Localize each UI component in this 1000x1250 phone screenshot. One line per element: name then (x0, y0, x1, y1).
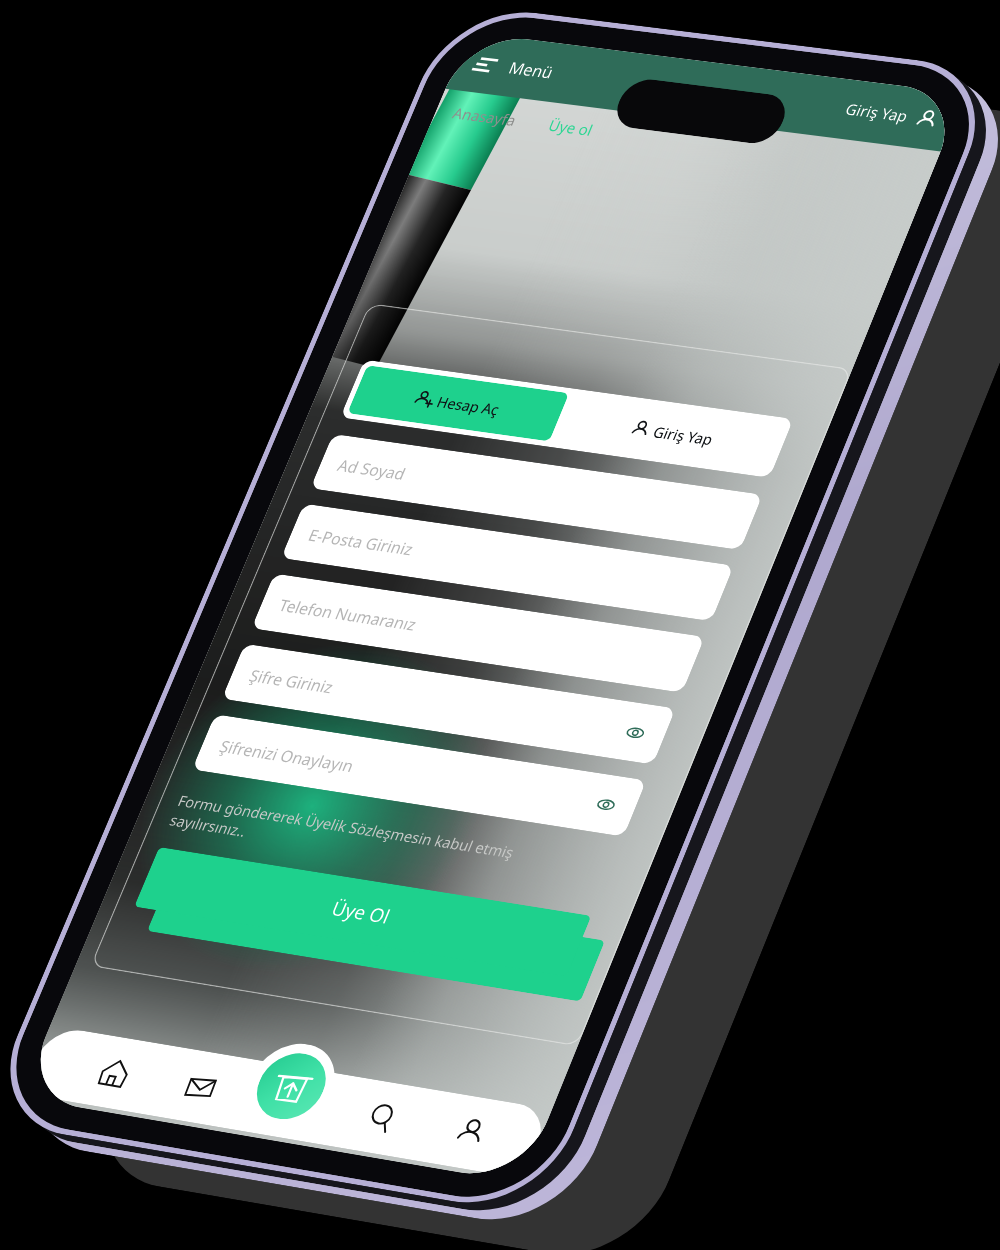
staticText: Giriş Yap (842, 99, 912, 127)
button[interactable]: Anasayfa (449, 103, 520, 131)
button[interactable]: Giriş Yap (552, 389, 794, 478)
button[interactable]: Telefon Numaranız (251, 573, 705, 693)
staticText: Şifrenizi Onaylayın (217, 735, 358, 776)
button[interactable]: Search (325, 1076, 440, 1160)
button[interactable]: Mail (143, 1046, 257, 1129)
staticText: Formu göndererek Üyelik Sözleşmesin kabu… (167, 790, 553, 888)
staticText: Menü (505, 57, 557, 83)
button[interactable]: Giriş Yap (842, 99, 941, 131)
button[interactable]: Ad Soyad (310, 434, 763, 550)
staticText: Giriş Yap (650, 422, 716, 449)
staticText: Şifre Giriniz (246, 664, 337, 697)
button[interactable]: Menu (470, 53, 500, 76)
button[interactable]: Upload (246, 1048, 336, 1124)
button[interactable]: Profile (412, 1091, 528, 1175)
button[interactable]: Üye ol (545, 115, 596, 141)
staticText: Telefon Numaranız (276, 594, 421, 635)
button[interactable]: Üye Ol (134, 847, 591, 977)
staticText: Ad Soyad (335, 454, 410, 484)
button[interactable]: Şifre Giriniz (222, 644, 676, 765)
button[interactable]: Hesap Aç (347, 365, 569, 441)
staticText: Üye Ol (328, 895, 395, 929)
button[interactable]: Home (57, 1031, 171, 1114)
staticText: Hesap Aç (434, 392, 503, 419)
button[interactable]: Şifrenizi Onaylayın (192, 714, 646, 837)
staticText: E-Posta Giriniz (305, 524, 418, 559)
button[interactable]: E-Posta Giriniz (281, 503, 734, 621)
